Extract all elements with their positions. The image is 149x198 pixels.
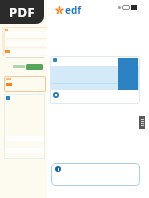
staticText: PDF: [9, 3, 35, 21]
button[interactable]: Feedback: [139, 116, 145, 129]
button[interactable]: PDF: [0, 0, 44, 24]
button[interactable]: [50, 56, 140, 104]
staticText: edf: [65, 3, 82, 17]
button[interactable]: [51, 163, 140, 186]
button[interactable]: Account menu: [118, 5, 137, 10]
button[interactable]: edf: [55, 3, 82, 17]
